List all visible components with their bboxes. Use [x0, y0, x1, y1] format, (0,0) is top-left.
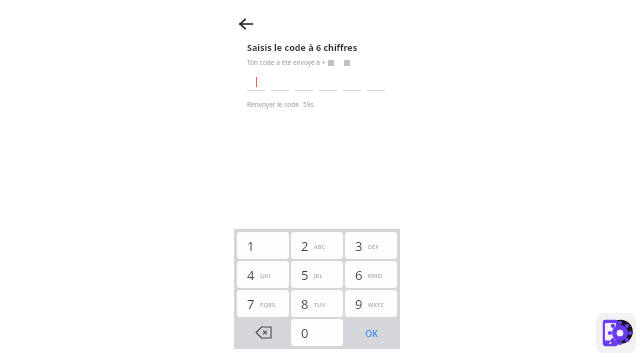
button[interactable]: [343, 76, 361, 91]
staticText: 8: [301, 295, 309, 313]
staticText: MNO: [368, 272, 383, 279]
button[interactable]: 6: [345, 261, 397, 288]
staticText: 59s: [303, 100, 314, 109]
staticText: TUV: [314, 301, 326, 308]
button[interactable]: Backspace: [237, 319, 289, 346]
staticText: GHI: [260, 272, 271, 279]
staticText: Saisis le code à 6 chiffres: [247, 41, 358, 53]
staticText: 6: [355, 266, 363, 284]
button[interactable]: 9: [345, 290, 397, 317]
button[interactable]: [271, 76, 289, 91]
button[interactable]: Renvoyer le code: [247, 100, 314, 109]
staticText: 7: [247, 295, 255, 313]
staticText: PQRS: [260, 301, 276, 308]
staticText: 0: [301, 324, 309, 342]
staticText: OK: [365, 327, 378, 339]
staticText: 9: [355, 295, 363, 313]
button[interactable]: [247, 76, 265, 91]
button[interactable]: 7: [237, 290, 289, 317]
button[interactable]: 2: [291, 232, 343, 259]
staticText: 2: [301, 237, 309, 255]
staticText: 4: [247, 266, 255, 284]
staticText: DEF: [368, 243, 379, 250]
button[interactable]: 4: [237, 261, 289, 288]
button[interactable]: 3: [345, 232, 397, 259]
staticText: Renvoyer le code: [247, 100, 299, 109]
staticText: Ton code a été envoyé à +: [247, 58, 326, 67]
button[interactable]: App logo: [596, 313, 636, 353]
button[interactable]: 0: [291, 319, 343, 346]
button[interactable]: OK: [345, 319, 397, 346]
staticText: 3: [355, 237, 363, 255]
button[interactable]: 5: [291, 261, 343, 288]
button[interactable]: [367, 76, 385, 91]
staticText: JKL: [314, 272, 323, 279]
button[interactable]: 8: [291, 290, 343, 317]
staticText: 5: [301, 266, 309, 284]
button[interactable]: [319, 76, 337, 91]
staticText: ABC: [314, 243, 326, 250]
button[interactable]: Back: [232, 10, 260, 38]
staticText: WXYZ: [368, 301, 384, 308]
button[interactable]: 1: [237, 232, 289, 259]
staticText: 1: [247, 237, 255, 255]
button[interactable]: [295, 76, 313, 91]
